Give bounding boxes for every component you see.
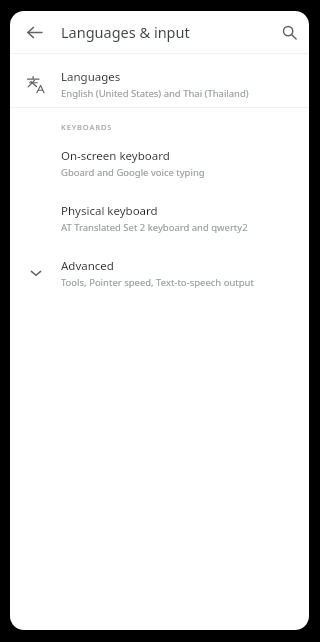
button[interactable]: On-screen keyboard: [10, 145, 309, 181]
staticText: Languages: [61, 69, 121, 85]
button[interactable]: Languages: [10, 54, 309, 107]
staticText: English (United States) and Thai (Thaila…: [61, 87, 249, 100]
button[interactable]: Physical keyboard: [10, 200, 309, 236]
button[interactable]: Back: [14, 12, 54, 52]
staticText: AT Translated Set 2 keyboard and qwerty2: [61, 221, 248, 234]
staticText: Languages & input: [61, 22, 190, 42]
staticText: KEYBOARDS: [61, 122, 113, 132]
button[interactable]: Advanced: [10, 255, 309, 291]
staticText: Tools, Pointer speed, Text-to-speech out…: [61, 276, 254, 289]
staticText: Physical keyboard: [61, 203, 158, 219]
staticText: Advanced: [61, 258, 114, 274]
button[interactable]: Search: [270, 13, 308, 51]
staticText: Gboard and Google voice typing: [61, 166, 205, 179]
staticText: On-screen keyboard: [61, 148, 170, 164]
